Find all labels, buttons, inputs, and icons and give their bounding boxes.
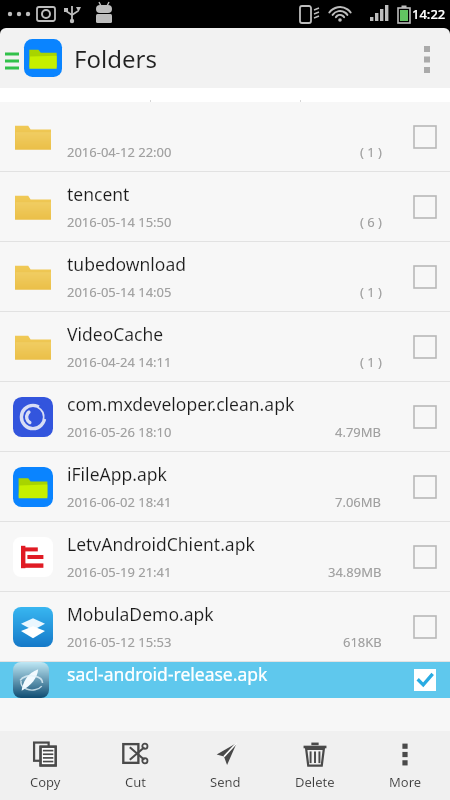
button[interactable]: Delete <box>270 731 360 800</box>
staticText: 2016-05-26 18:10 <box>67 423 172 441</box>
staticText: Copy <box>30 773 61 791</box>
staticText: tubedownload <box>67 252 187 276</box>
staticText: iFileApp.apk <box>67 462 167 486</box>
staticText: SDCARD <box>46 98 104 120</box>
staticText: FAVORITE <box>337 98 414 120</box>
staticText: 14:22 <box>412 5 446 23</box>
button[interactable]: Select sacl-android-release.apk <box>408 663 442 697</box>
button[interactable]: tubedownload <box>0 242 450 312</box>
staticText: More <box>389 773 422 791</box>
button[interactable]: Select iFileApp.apk <box>408 470 442 504</box>
button[interactable]: Select <box>408 120 442 154</box>
staticText: 2016-05-12 15:53 <box>67 633 172 651</box>
staticText: tencent <box>67 182 130 206</box>
button[interactable]: Select tencent <box>408 190 442 224</box>
staticText: MobulaDemo.apk <box>67 602 214 626</box>
staticText: 7.06MB <box>335 493 382 511</box>
button[interactable]: Select LetvAndroidChient.apk <box>408 540 442 574</box>
button[interactable]: VideoCache <box>0 312 450 382</box>
staticText: 2016-04-24 14:11 <box>67 353 172 371</box>
button[interactable]: FAVORITE <box>301 88 450 130</box>
staticText: com.mxdeveloper.clean.apk <box>67 392 295 416</box>
staticText: ( 6 ) <box>360 213 382 231</box>
staticText: 2016-06-02 18:41 <box>67 493 172 511</box>
staticText: Cut <box>125 773 146 791</box>
button[interactable]: iFileApp.apk <box>0 452 450 522</box>
staticText: 618KB <box>343 633 382 651</box>
button[interactable]: MobulaDemo.apk <box>0 592 450 662</box>
staticText: 4.79MB <box>335 423 382 441</box>
staticText: 2016-04-12 22:00 <box>67 143 172 161</box>
staticText: ( 1 ) <box>360 283 382 301</box>
button[interactable]: Send <box>180 731 270 800</box>
button[interactable]: Cut <box>90 731 180 800</box>
staticText: sacl-android-release.apk <box>67 662 268 686</box>
staticText: 2016-05-14 14:05 <box>67 283 172 301</box>
button[interactable]: INBOX <box>151 88 300 130</box>
staticText: Folders <box>74 42 157 75</box>
button[interactable]: More <box>360 731 450 800</box>
button[interactable]: Select com.mxdeveloper.clean.apk <box>408 400 442 434</box>
staticText: 2016-05-14 15:50 <box>67 213 172 231</box>
button[interactable]: sacl-android-release.apk <box>0 662 450 698</box>
button[interactable]: LetvAndroidChient.apk <box>0 522 450 592</box>
button[interactable]: com.mxdeveloper.clean.apk <box>0 382 450 452</box>
staticText: VideoCache <box>67 322 164 346</box>
staticText: 34.89MB <box>328 563 382 581</box>
button[interactable]: 2016-04-12 22:00 <box>0 102 450 172</box>
button[interactable]: Select VideoCache <box>408 330 442 364</box>
button[interactable]: SDCARD <box>0 88 150 130</box>
staticText: Send <box>210 773 241 791</box>
staticText: Delete <box>295 773 335 791</box>
button[interactable]: tencent <box>0 172 450 242</box>
staticText: INBOX <box>201 98 250 120</box>
button[interactable]: More options <box>404 28 450 88</box>
button[interactable]: Menu <box>2 28 22 88</box>
staticText: LetvAndroidChient.apk <box>67 532 255 556</box>
staticText: ( 1 ) <box>360 353 382 371</box>
staticText: ( 1 ) <box>360 143 382 161</box>
button[interactable]: Copy <box>0 731 90 800</box>
button[interactable]: Select MobulaDemo.apk <box>408 610 442 644</box>
button[interactable]: Select tubedownload <box>408 260 442 294</box>
staticText: 2016-05-19 21:41 <box>67 563 172 581</box>
